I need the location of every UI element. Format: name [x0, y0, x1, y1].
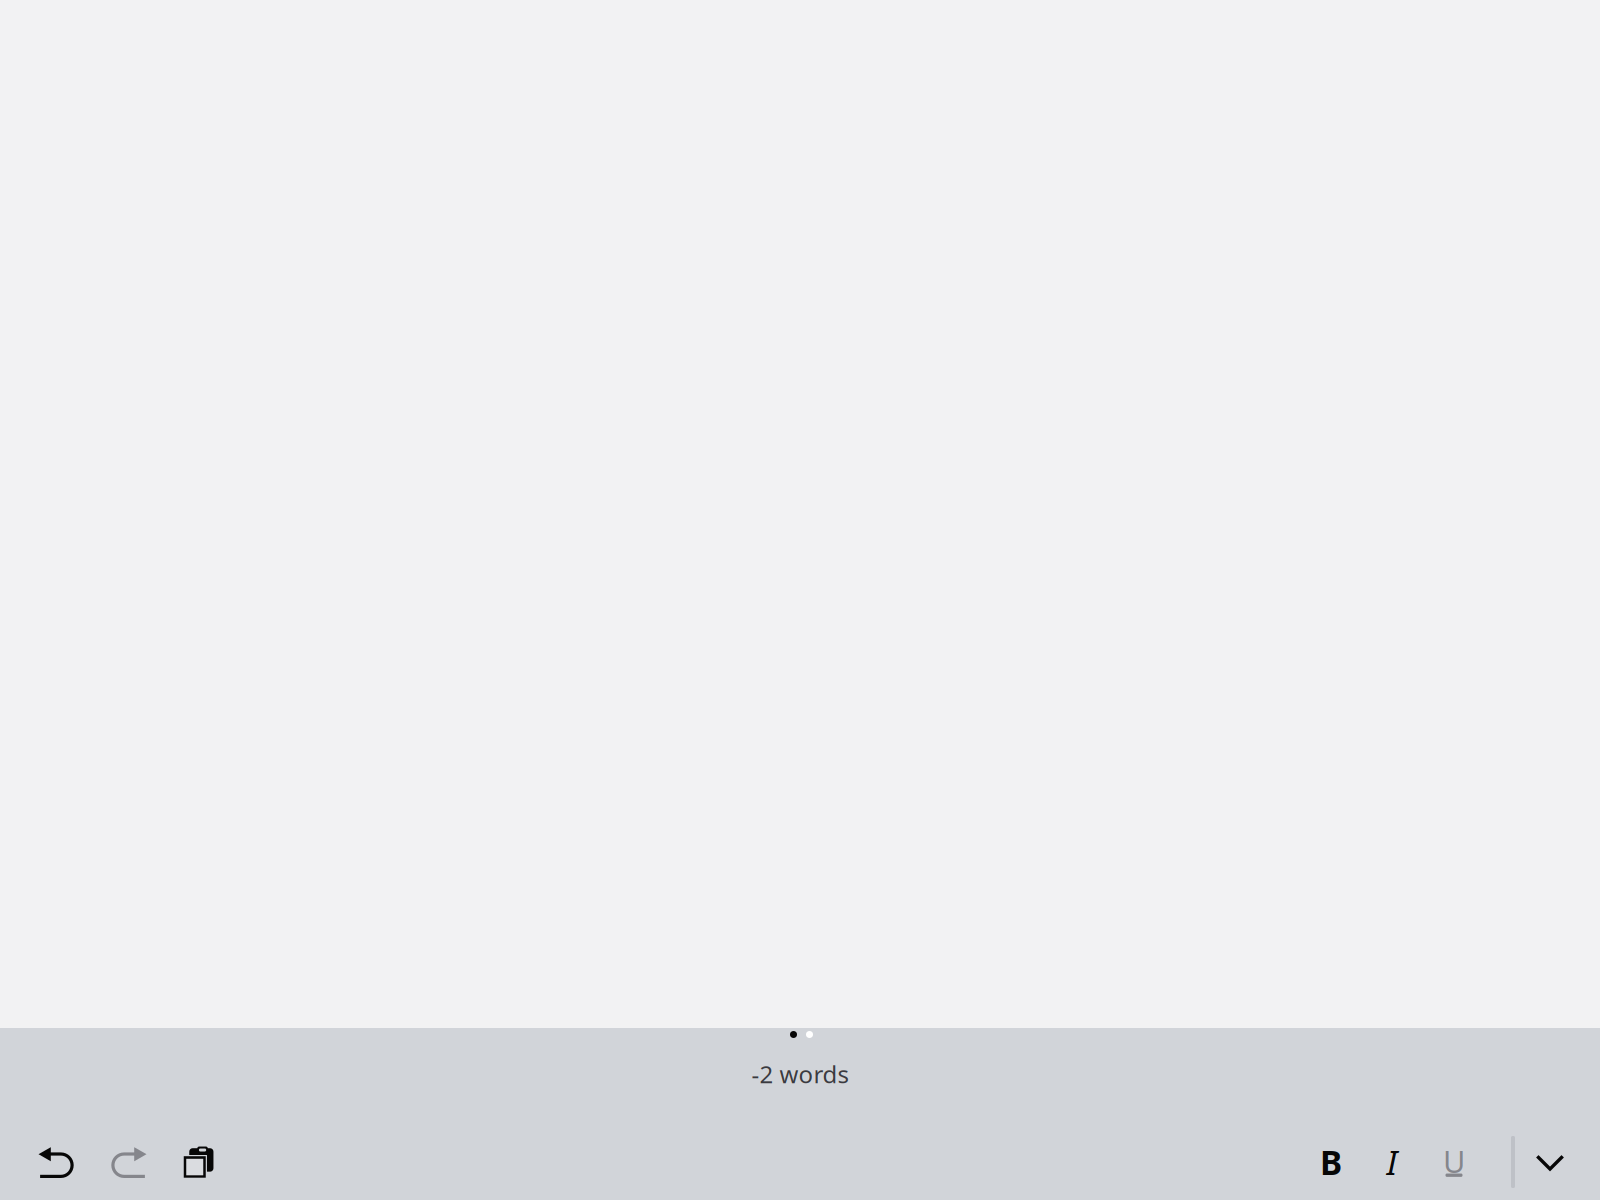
staticText: I: [1386, 1140, 1397, 1184]
button[interactable]: Underline: [1421, 1130, 1482, 1192]
button[interactable]: Undo: [20, 1130, 92, 1192]
staticText: B: [1320, 1140, 1342, 1184]
staticText: -2 words: [751, 1058, 848, 1090]
button[interactable]: Italic: [1360, 1130, 1421, 1192]
button[interactable]: Hide keyboard: [1518, 1130, 1582, 1192]
button[interactable]: Redo: [92, 1130, 164, 1192]
button[interactable]: Bold: [1299, 1130, 1360, 1192]
staticText: U: [1443, 1141, 1465, 1181]
button[interactable]: Paste: [164, 1130, 228, 1192]
